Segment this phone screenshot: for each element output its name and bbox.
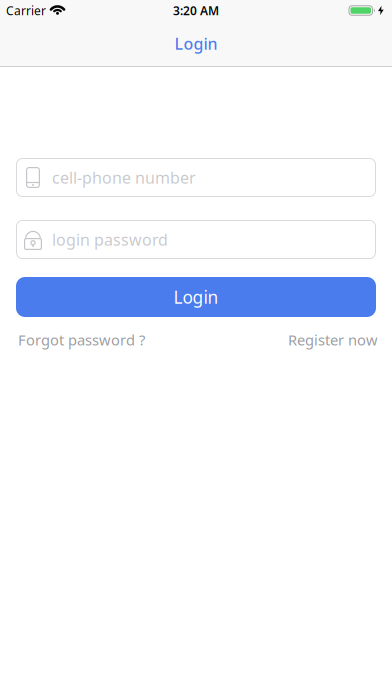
staticText: login password	[52, 229, 168, 250]
staticText: Login	[174, 33, 217, 54]
button[interactable]: Register now	[288, 330, 378, 349]
staticText: Login	[173, 285, 218, 308]
staticText: Forgot password ?	[18, 330, 145, 349]
staticText: 3:20 AM	[173, 2, 219, 18]
staticText: cell-phone number	[52, 167, 196, 188]
button[interactable]: Login	[16, 277, 376, 317]
button[interactable]: Forgot password ?	[18, 330, 145, 349]
staticText: Carrier	[6, 2, 46, 18]
staticText: Register now	[288, 330, 378, 349]
